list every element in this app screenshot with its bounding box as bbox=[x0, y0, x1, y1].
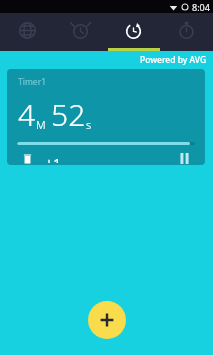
button[interactable]: Timer1 bbox=[7, 69, 205, 165]
staticText: M bbox=[36, 117, 46, 132]
staticText: Timer1 bbox=[18, 76, 47, 88]
button[interactable]: Pause timer bbox=[173, 152, 195, 165]
button[interactable]: Timer bbox=[107, 13, 160, 51]
staticText: s bbox=[86, 117, 92, 132]
button[interactable]: Add timer bbox=[88, 301, 126, 339]
staticText: 4 bbox=[18, 94, 36, 135]
staticText: 52 bbox=[51, 94, 86, 135]
staticText: +1 bbox=[45, 154, 62, 163]
button[interactable]: +1 bbox=[41, 152, 66, 165]
staticText: Powered by AVG bbox=[140, 54, 207, 66]
button[interactable]: World clock bbox=[0, 13, 54, 51]
staticText: 8:04 bbox=[192, 1, 210, 13]
button[interactable]: Alarm bbox=[54, 13, 107, 51]
button[interactable]: Stopwatch bbox=[160, 13, 213, 51]
button[interactable]: Delete timer bbox=[17, 152, 37, 165]
